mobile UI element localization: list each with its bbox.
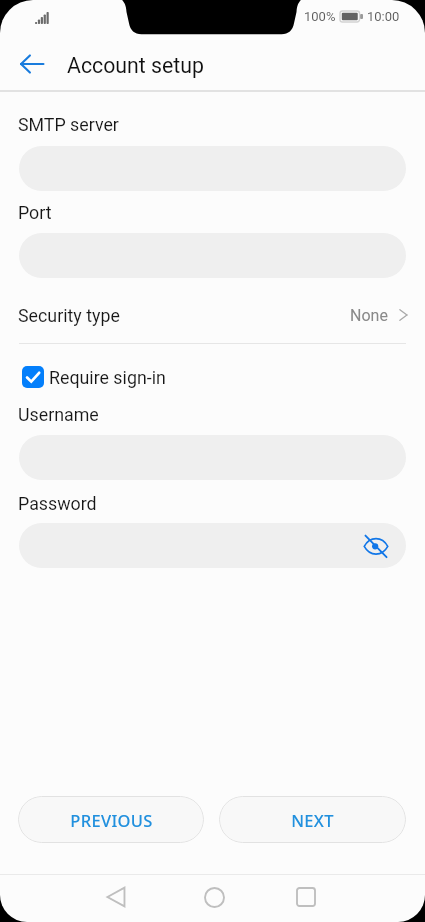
staticText: Password — [18, 493, 97, 514]
button[interactable]: Home — [190, 873, 238, 921]
staticText: Require sign-in — [49, 367, 166, 388]
staticText: Security type — [18, 305, 120, 326]
button[interactable]: Show password — [364, 534, 388, 558]
button[interactable]: PREVIOUS — [18, 796, 204, 843]
staticText: PREVIOUS — [70, 809, 153, 831]
staticText: Port — [18, 202, 52, 223]
staticText: None — [350, 306, 388, 325]
button[interactable]: NEXT — [219, 796, 406, 843]
button[interactable]: Show password — [19, 523, 406, 568]
button[interactable]: Back — [12, 44, 52, 84]
button[interactable]: Back — [92, 873, 140, 921]
staticText: SMTP server — [18, 114, 119, 135]
staticText: Username — [18, 404, 99, 425]
staticText: Account setup — [67, 53, 205, 78]
button[interactable]: Recent apps — [282, 873, 330, 921]
staticText: 10:00 — [367, 9, 400, 24]
staticText: NEXT — [291, 809, 334, 831]
button[interactable]: Security type — [0, 295, 425, 335]
staticText: 100% — [304, 9, 336, 24]
button[interactable]: Require sign-in — [22, 366, 166, 388]
